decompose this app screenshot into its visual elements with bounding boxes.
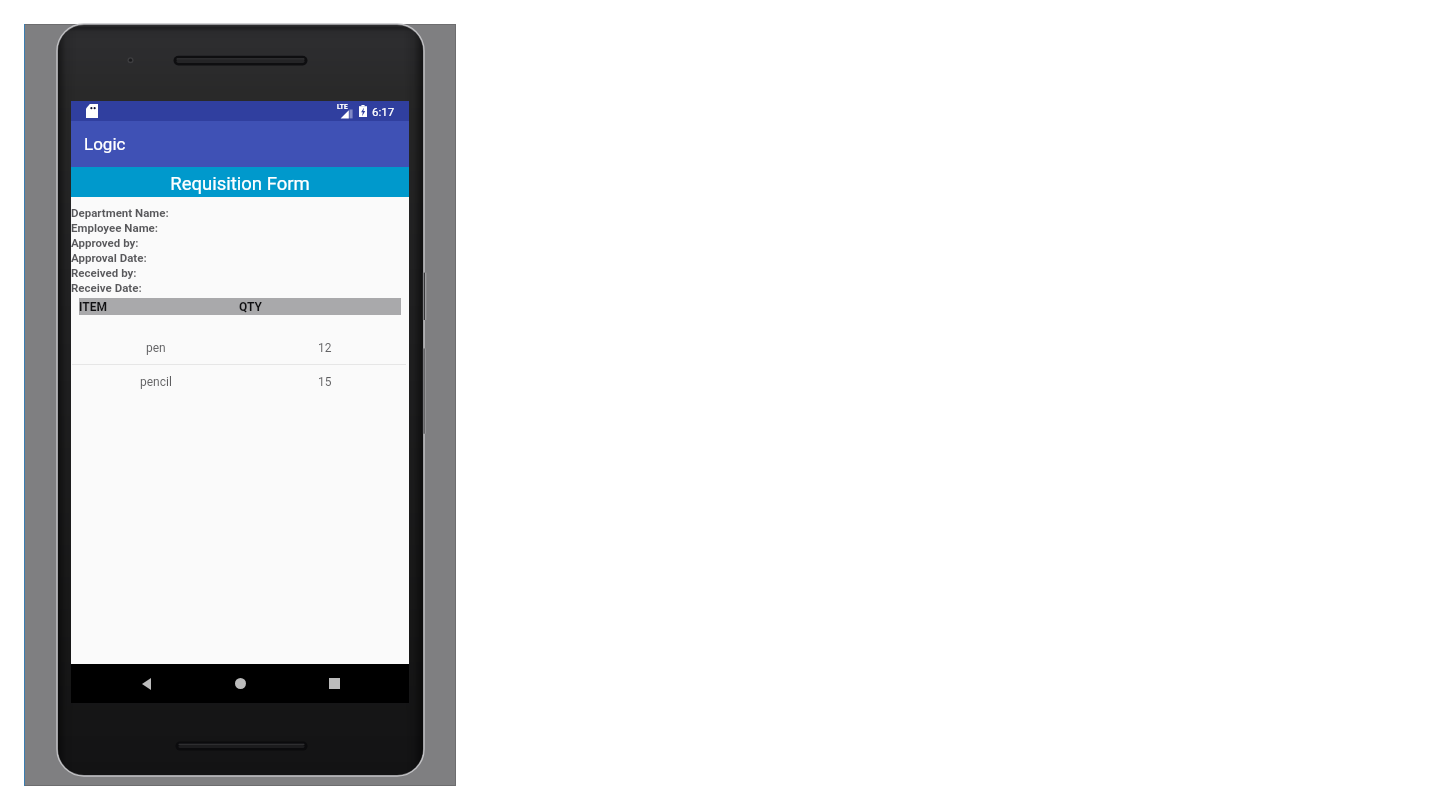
staticText: Approval Date: [71, 251, 147, 264]
button[interactable]: pencil [71, 365, 409, 398]
staticText: Logic [84, 134, 126, 154]
button[interactable]: ITEM [79, 298, 401, 315]
button[interactable]: Recent apps [316, 664, 352, 703]
staticText: Receive Date: [71, 281, 142, 294]
staticText: Department Name: [71, 206, 169, 219]
staticText: QTY [239, 300, 263, 314]
button[interactable]: Notification: Logic [86, 104, 98, 118]
button[interactable]: Home [222, 664, 258, 703]
staticText: ITEM [79, 300, 108, 314]
staticText: Approved by: [71, 236, 139, 249]
button[interactable]: Logic [71, 121, 409, 167]
button[interactable]: Requisition Form [71, 167, 409, 197]
staticText: 12 [318, 341, 332, 355]
staticText: Employee Name: [71, 221, 159, 234]
staticText: 6:17 [372, 105, 395, 118]
staticText: pen [146, 341, 166, 355]
button[interactable]: Back [128, 664, 164, 703]
staticText: Received by: [71, 266, 137, 279]
staticText: pencil [140, 375, 172, 389]
staticText: LTE [337, 103, 348, 111]
staticText: 15 [318, 375, 332, 389]
button[interactable]: pen [71, 331, 409, 364]
staticText: Requisition Form [170, 173, 310, 195]
